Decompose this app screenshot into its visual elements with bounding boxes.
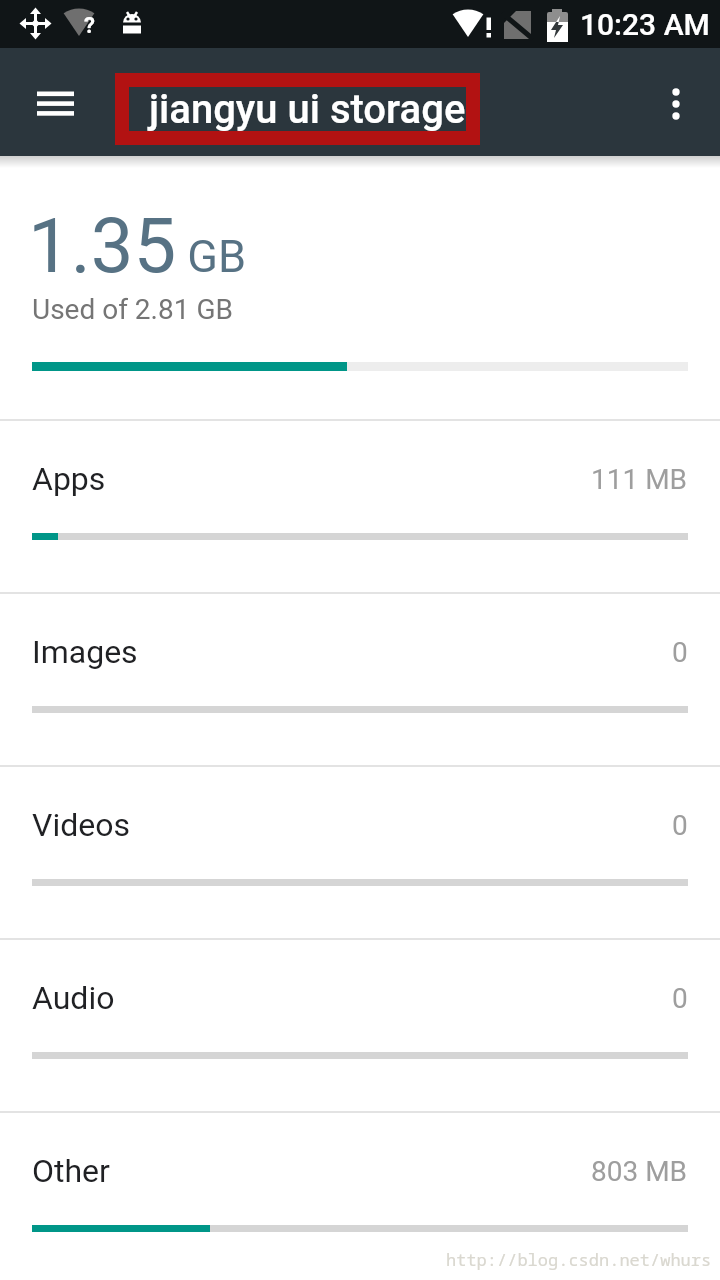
- staticText: 10:23 AM: [580, 7, 710, 42]
- button[interactable]: Apps: [32, 456, 688, 502]
- staticText: 0: [672, 636, 688, 669]
- staticText: 1.35 GB: [28, 201, 247, 290]
- staticText: Audio: [32, 979, 115, 1017]
- button[interactable]: [0, 48, 96, 156]
- staticText: 0: [672, 809, 688, 842]
- button[interactable]: Other: [32, 1148, 688, 1194]
- staticText: ?: [84, 13, 95, 39]
- staticText: Apps: [32, 460, 106, 498]
- staticText: Other: [32, 1152, 110, 1190]
- staticText: Used of 2.81 GB: [32, 293, 233, 326]
- button[interactable]: Images: [32, 629, 688, 675]
- staticText: jiangyu ui storage: [149, 86, 466, 133]
- staticText: Images: [32, 633, 138, 671]
- staticText: 0: [672, 982, 688, 1015]
- staticText: http://blog.csdn.net/whurs: [446, 1248, 712, 1271]
- button[interactable]: Videos: [32, 802, 688, 848]
- staticText: 111 MB: [591, 463, 688, 496]
- staticText: Videos: [32, 806, 130, 844]
- button[interactable]: Audio: [32, 975, 688, 1021]
- staticText: 803 MB: [591, 1155, 688, 1188]
- button[interactable]: [640, 48, 720, 156]
